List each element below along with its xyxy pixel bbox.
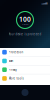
staticText: Scan (9, 59, 14, 63)
staticText: 100 (19, 15, 31, 24)
button[interactable]: Scan (21, 89, 28, 96)
staticText: More tools (9, 77, 24, 80)
button[interactable]: More tools (0, 74, 50, 83)
button[interactable]: Scan (0, 57, 50, 65)
staticText: Protection (9, 50, 24, 54)
staticText: protected (21, 23, 28, 25)
staticText: Your device is protected (8, 32, 41, 36)
button[interactable]: Privacy (0, 65, 50, 74)
staticText: ▂▃▅ (41, 1, 47, 4)
staticText: Privacy (9, 68, 17, 71)
button[interactable]: Protection (0, 48, 50, 56)
